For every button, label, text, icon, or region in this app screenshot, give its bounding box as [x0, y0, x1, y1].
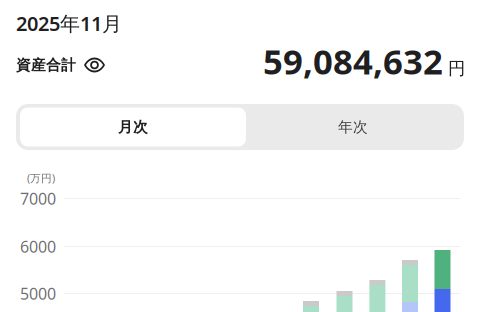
button[interactable]: 年次	[246, 107, 460, 146]
staticText: 5000	[20, 283, 56, 304]
staticText: 6000	[20, 236, 56, 257]
staticText: 資産合計	[16, 56, 76, 74]
button[interactable]: 月次	[20, 107, 246, 146]
staticText: 59,084,632	[263, 38, 443, 84]
staticText: 年次	[338, 118, 368, 136]
staticText: 円	[448, 58, 465, 79]
staticText: 月次	[118, 118, 148, 136]
staticText: 2025年11月	[16, 10, 122, 37]
staticText: (万円)	[27, 171, 55, 185]
staticText: 7000	[20, 188, 56, 209]
button[interactable]: 資産合計の表示を切り替え	[16, 56, 105, 74]
